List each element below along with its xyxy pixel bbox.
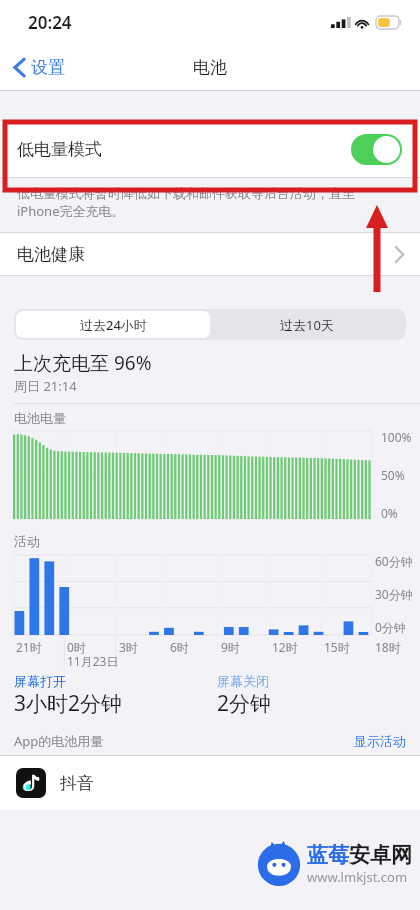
staticText: 设置 [31,57,65,78]
staticText: 电池电量 [14,410,66,426]
staticText: 9时 [221,639,240,655]
staticText: 0% [381,505,398,521]
staticText: 显示活动 [354,733,406,749]
staticText: 3时 [119,639,138,655]
staticText: 活动 [14,533,40,549]
button[interactable]: 抖音 [0,756,420,810]
staticText: 20:24 [28,11,72,34]
staticText: 30分钟 [375,586,413,602]
staticText: 过去10天 [280,316,334,334]
button[interactable]: 电池健康 [0,233,420,275]
button[interactable]: Low Power Mode toggle [351,134,402,165]
staticText: 屏幕打开 [14,673,66,689]
staticText: 6时 [170,639,189,655]
staticText: 蓝莓 [307,842,349,868]
staticText: www.lmkjst.com [307,868,408,886]
staticText: 屏幕关闭 [217,673,269,689]
staticText: 抖音 [60,773,94,794]
staticText: 过去24小时 [80,316,147,334]
button[interactable]: 显示活动 [354,733,406,749]
staticText: 周日 21:14 [14,377,77,395]
staticText: App的电池用量 [14,732,104,750]
button[interactable]: 设置 [10,53,69,82]
staticText: 低电量模式 [17,139,102,160]
button[interactable]: 过去24小时 [16,311,210,338]
staticText: 18时 [375,639,401,655]
staticText: 0时 [67,639,86,655]
staticText: 12时 [272,639,298,655]
staticText: 上次充电至 96% [14,350,152,376]
staticText: 60分钟 [375,553,413,569]
staticText: 2分钟 [217,689,272,718]
staticText: 3小时2分钟 [14,689,123,718]
staticText: 电池 [193,57,227,78]
staticText: 电池健康 [17,244,85,265]
staticText: 低电量模式将暂时降低如下载和邮件获取等后台活动，直至 iPhone完全充电。 [17,185,403,220]
staticText: 21时 [16,639,42,655]
staticText: 15时 [324,639,350,655]
staticText: 50% [381,467,405,483]
staticText: 0分钟 [375,619,406,635]
button[interactable]: 过去10天 [210,311,404,338]
staticText: 100% [381,429,412,445]
staticText: 11月23日 [67,653,119,669]
staticText: 安卓网 [349,842,412,868]
button[interactable]: 低电量模式 [0,122,420,177]
